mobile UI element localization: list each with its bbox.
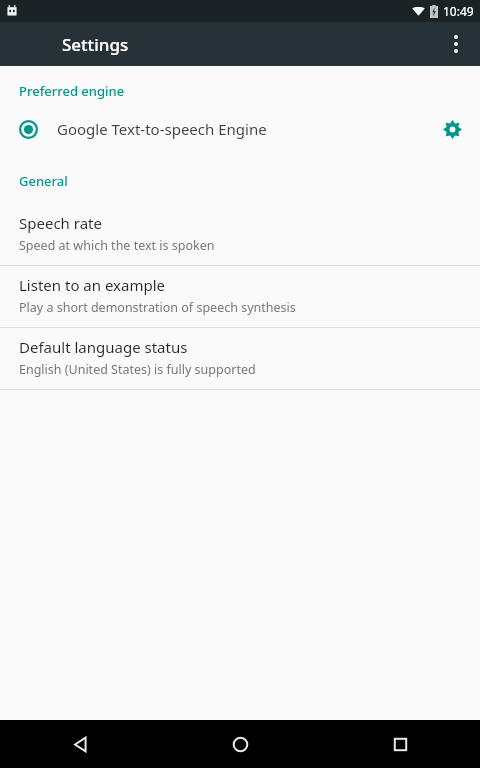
button[interactable]: Back: [0, 720, 160, 768]
staticText: General: [19, 172, 68, 190]
staticText: Default language status: [19, 337, 188, 357]
staticText: English (United States) is fully support…: [19, 361, 256, 378]
staticText: 10:49: [443, 3, 474, 19]
button[interactable]: Recent apps: [320, 720, 480, 768]
staticText: Listen to an example: [19, 275, 166, 295]
staticText: Speed at which the text is spoken: [19, 237, 215, 254]
staticText: Google Text-to-speech Engine: [57, 119, 424, 139]
button[interactable]: Engine settings: [424, 100, 480, 158]
button[interactable]: Speech rate: [0, 204, 480, 265]
staticText: Preferred engine: [19, 82, 125, 100]
button[interactable]: Home: [160, 720, 320, 768]
button[interactable]: Listen to an example: [0, 266, 480, 327]
button[interactable]: More options: [432, 22, 480, 66]
staticText: Settings: [62, 33, 129, 56]
staticText: Play a short demonstration of speech syn…: [19, 299, 296, 316]
button[interactable]: Google Text-to-speech Engine: [0, 100, 480, 158]
staticText: Speech rate: [19, 213, 102, 233]
button[interactable]: Default language status: [0, 328, 480, 389]
